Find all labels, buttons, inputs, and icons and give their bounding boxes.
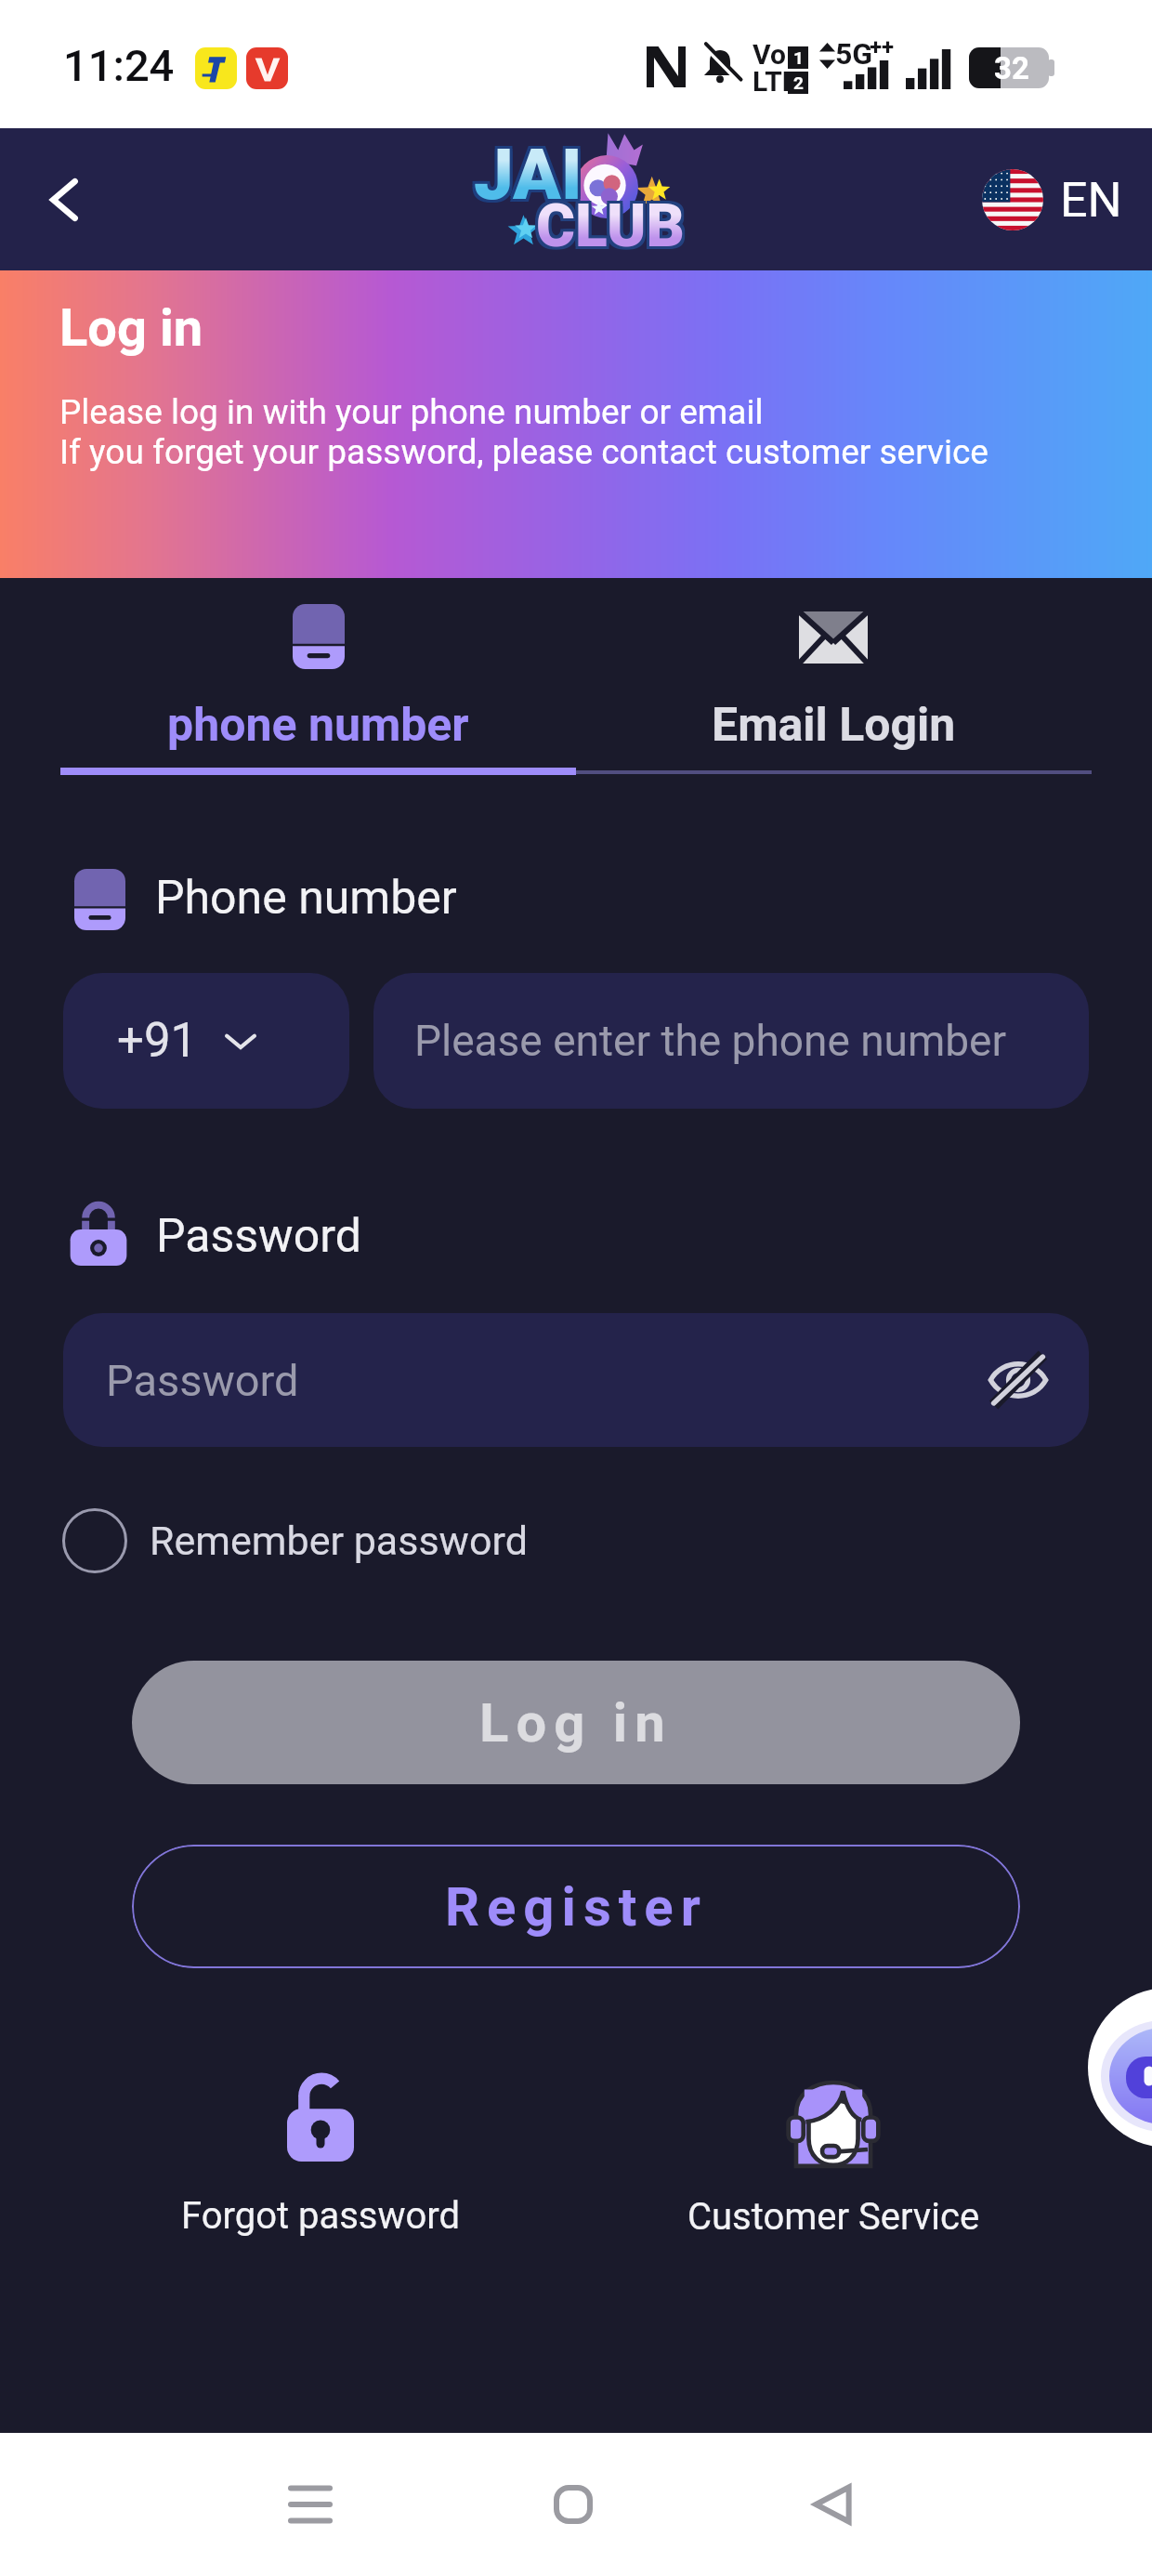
- staticText: JAI: [477, 133, 585, 216]
- button[interactable]: Back: [777, 2449, 888, 2560]
- staticText: LTE: [753, 65, 798, 98]
- staticText: 5G: [835, 36, 873, 72]
- staticText: 32: [994, 50, 1029, 86]
- button[interactable]: Recent apps: [255, 2449, 366, 2560]
- button[interactable]: AI Assistant: [1088, 1988, 1152, 2148]
- staticText: JAI: [474, 136, 583, 218]
- button[interactable]: Back: [22, 158, 106, 242]
- staticText: EN: [1060, 172, 1122, 229]
- staticText: 1: [793, 47, 804, 68]
- staticText: JAI: [474, 130, 583, 213]
- staticText: CLUB: [536, 191, 685, 261]
- button[interactable]: Register: [132, 1845, 1020, 1968]
- staticText: JAI: [477, 136, 585, 218]
- staticText: CLUB: [539, 191, 687, 261]
- staticText: CLUB: [539, 194, 687, 264]
- button[interactable]: Show password: [979, 1341, 1057, 1419]
- staticText: JAI: [471, 136, 580, 218]
- button[interactable]: Email Login: [576, 591, 1092, 773]
- staticText: CLUB: [539, 189, 687, 258]
- staticText: CLUB: [536, 194, 685, 264]
- staticText: CLUB: [533, 191, 682, 261]
- staticText: phone number: [167, 698, 469, 753]
- staticText: Register: [445, 1875, 708, 1939]
- staticText: JAI: [474, 133, 583, 216]
- staticText: Customer Service: [687, 2195, 980, 2239]
- button[interactable]: Password: [63, 1313, 1089, 1447]
- staticText: Log in: [59, 297, 203, 359]
- button[interactable]: EN: [973, 160, 1132, 240]
- staticText: Password: [106, 1355, 299, 1406]
- staticText: 11:24: [63, 40, 175, 91]
- staticText: JAI: [477, 130, 585, 213]
- staticText: CLUB: [533, 189, 682, 258]
- button[interactable]: Forgot password: [130, 2044, 511, 2277]
- staticText: CLUB: [536, 189, 685, 258]
- staticText: Password: [156, 1209, 361, 1264]
- button[interactable]: Please enter the phone number: [373, 973, 1089, 1109]
- button[interactable]: Log in: [132, 1661, 1020, 1784]
- staticText: If you forget your password, please cont…: [59, 432, 988, 472]
- staticText: Log in: [479, 1691, 673, 1755]
- staticText: ++: [870, 34, 895, 60]
- button[interactable]: phone number: [60, 591, 576, 773]
- button[interactable]: +91: [63, 973, 349, 1109]
- staticText: Please log in with your phone number or …: [59, 392, 764, 432]
- staticText: Phone number: [155, 871, 457, 926]
- staticText: 2: [793, 72, 804, 93]
- staticText: Vo: [753, 38, 786, 71]
- button[interactable]: Remember password: [56, 1498, 528, 1584]
- staticText: Forgot password: [181, 2194, 461, 2238]
- staticText: Email Login: [712, 698, 956, 753]
- staticText: +91: [117, 1013, 198, 1069]
- staticText: JAI: [471, 130, 580, 213]
- staticText: CLUB: [533, 194, 682, 264]
- button[interactable]: Customer Service: [643, 2044, 1024, 2277]
- staticText: JAI: [471, 133, 580, 216]
- staticText: Please enter the phone number: [414, 1016, 1007, 1066]
- staticText: Remember password: [150, 1518, 528, 1564]
- button[interactable]: Home: [517, 2449, 629, 2560]
